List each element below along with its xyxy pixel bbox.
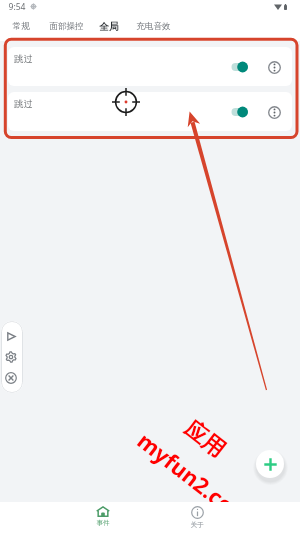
button[interactable]: Play (3, 328, 19, 344)
staticText: 事件 (96, 519, 110, 527)
button[interactable]: 关于 (173, 506, 221, 529)
staticText: 关于 (190, 521, 204, 529)
button[interactable]: More options (266, 104, 282, 120)
staticText: 面部操控 (49, 21, 84, 32)
button[interactable]: 事件 (79, 506, 127, 527)
button[interactable]: Toggle (230, 105, 248, 119)
staticText: myfun2.com (131, 425, 258, 533)
button[interactable]: 跳过 (8, 92, 292, 131)
staticText: 跳过 (14, 53, 33, 65)
staticText: 充电音效 (136, 21, 171, 32)
button[interactable]: Close (3, 370, 19, 386)
button[interactable]: Settings (3, 349, 19, 365)
button[interactable]: 跳过 (8, 47, 292, 86)
staticText: 全局 (99, 21, 119, 33)
staticText: 常规 (12, 21, 30, 32)
button[interactable]: More options (266, 59, 282, 75)
staticText: 跳过 (14, 98, 33, 110)
button[interactable]: 充电音效 (130, 19, 177, 34)
button[interactable]: 常规 (6, 19, 36, 34)
staticText: 9:54 (8, 1, 26, 13)
button[interactable]: 全局 (93, 19, 125, 34)
button[interactable]: 面部操控 (43, 19, 90, 34)
button[interactable]: Toggle (230, 60, 248, 74)
button[interactable]: Add (256, 450, 284, 478)
staticText: 应用 (179, 415, 231, 464)
